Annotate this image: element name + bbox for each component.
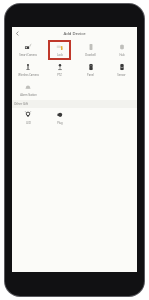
button[interactable]: Panel	[75, 60, 106, 80]
staticText: Wireless Camera	[18, 73, 39, 77]
button[interactable]: LED	[12, 108, 44, 128]
staticText: Lock	[57, 53, 63, 57]
button[interactable]: Sensor	[106, 60, 137, 80]
staticText: Plug	[57, 121, 63, 125]
button[interactable]: Wireless Camera	[12, 60, 44, 80]
staticText: PTZ	[57, 73, 62, 77]
button[interactable]: Doorbell	[75, 40, 106, 60]
button[interactable]: Lock	[44, 40, 75, 60]
staticText: Sensor	[117, 73, 126, 77]
staticText: Smart Camera	[19, 53, 37, 57]
staticText: Other Gift	[14, 102, 29, 106]
button[interactable]: Back	[12, 28, 23, 39]
staticText: LED	[26, 121, 31, 125]
button[interactable]: PTZ	[44, 60, 75, 80]
button[interactable]: Alarm Station	[12, 80, 44, 100]
staticText: Hub	[119, 53, 125, 57]
staticText: Alarm Station	[20, 93, 37, 97]
staticText: Doorbell	[85, 53, 96, 57]
staticText: Add Device	[63, 31, 86, 37]
button[interactable]: Smart Camera	[12, 40, 44, 60]
button[interactable]: Hub	[106, 40, 137, 60]
button[interactable]: Plug	[44, 108, 75, 128]
staticText: Panel	[87, 73, 94, 77]
